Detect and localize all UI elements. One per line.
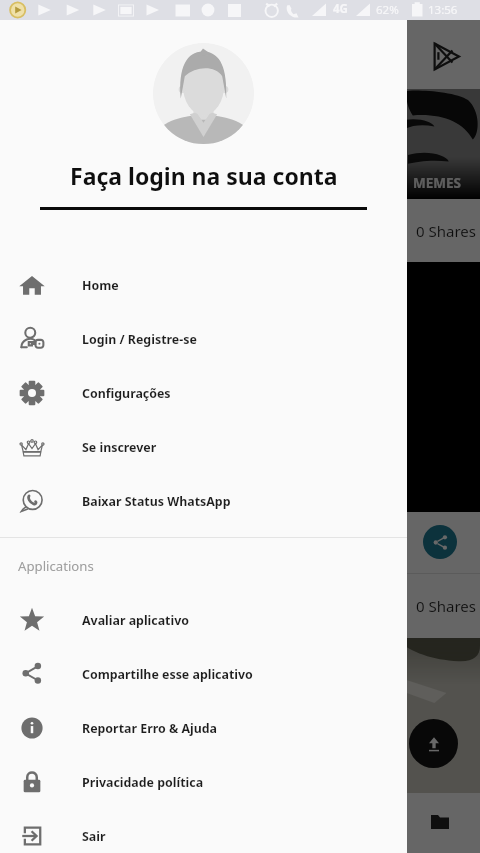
button[interactable]: Baixar Status WhatsApp: [0, 474, 407, 528]
button[interactable]: Se inscrever: [0, 420, 407, 474]
staticText: 0 Shares: [416, 596, 476, 616]
button[interactable]: Configurações: [0, 366, 407, 420]
button[interactable]: Privacidade política: [0, 755, 407, 809]
staticText: 0 Shares: [416, 221, 476, 241]
button[interactable]: Sair: [0, 809, 407, 853]
button[interactable]: Upload: [409, 719, 458, 768]
staticText: Avaliar aplicativo: [82, 612, 190, 629]
staticText: Sair: [82, 828, 106, 845]
staticText: 13:56: [428, 2, 458, 18]
staticText: Privacidade política: [82, 774, 204, 791]
staticText: Baixar Status WhatsApp: [82, 493, 231, 510]
staticText: MEMES: [413, 174, 462, 192]
staticText: Faça login na sua conta: [70, 160, 338, 191]
button[interactable]: Applications: [0, 538, 407, 593]
button[interactable]: Login / Registre-se: [0, 312, 407, 366]
button[interactable]: Reportar Erro & Ajuda: [0, 701, 407, 755]
button[interactable]: Avaliar aplicativo: [0, 593, 407, 647]
staticText: Login / Registre-se: [82, 331, 197, 348]
staticText: 62%: [376, 2, 399, 18]
staticText: 4G: [333, 1, 348, 17]
staticText: Se inscrever: [82, 439, 157, 456]
button[interactable]: Compartilhe esse aplicativo: [0, 647, 407, 701]
staticText: Reportar Erro & Ajuda: [82, 720, 218, 737]
button[interactable]: Share: [423, 525, 457, 559]
staticText: Compartilhe esse aplicativo: [82, 666, 253, 683]
staticText: Configurações: [82, 385, 171, 402]
button[interactable]: Home: [0, 258, 407, 312]
staticText: Applications: [18, 557, 94, 575]
staticText: Home: [82, 277, 119, 294]
